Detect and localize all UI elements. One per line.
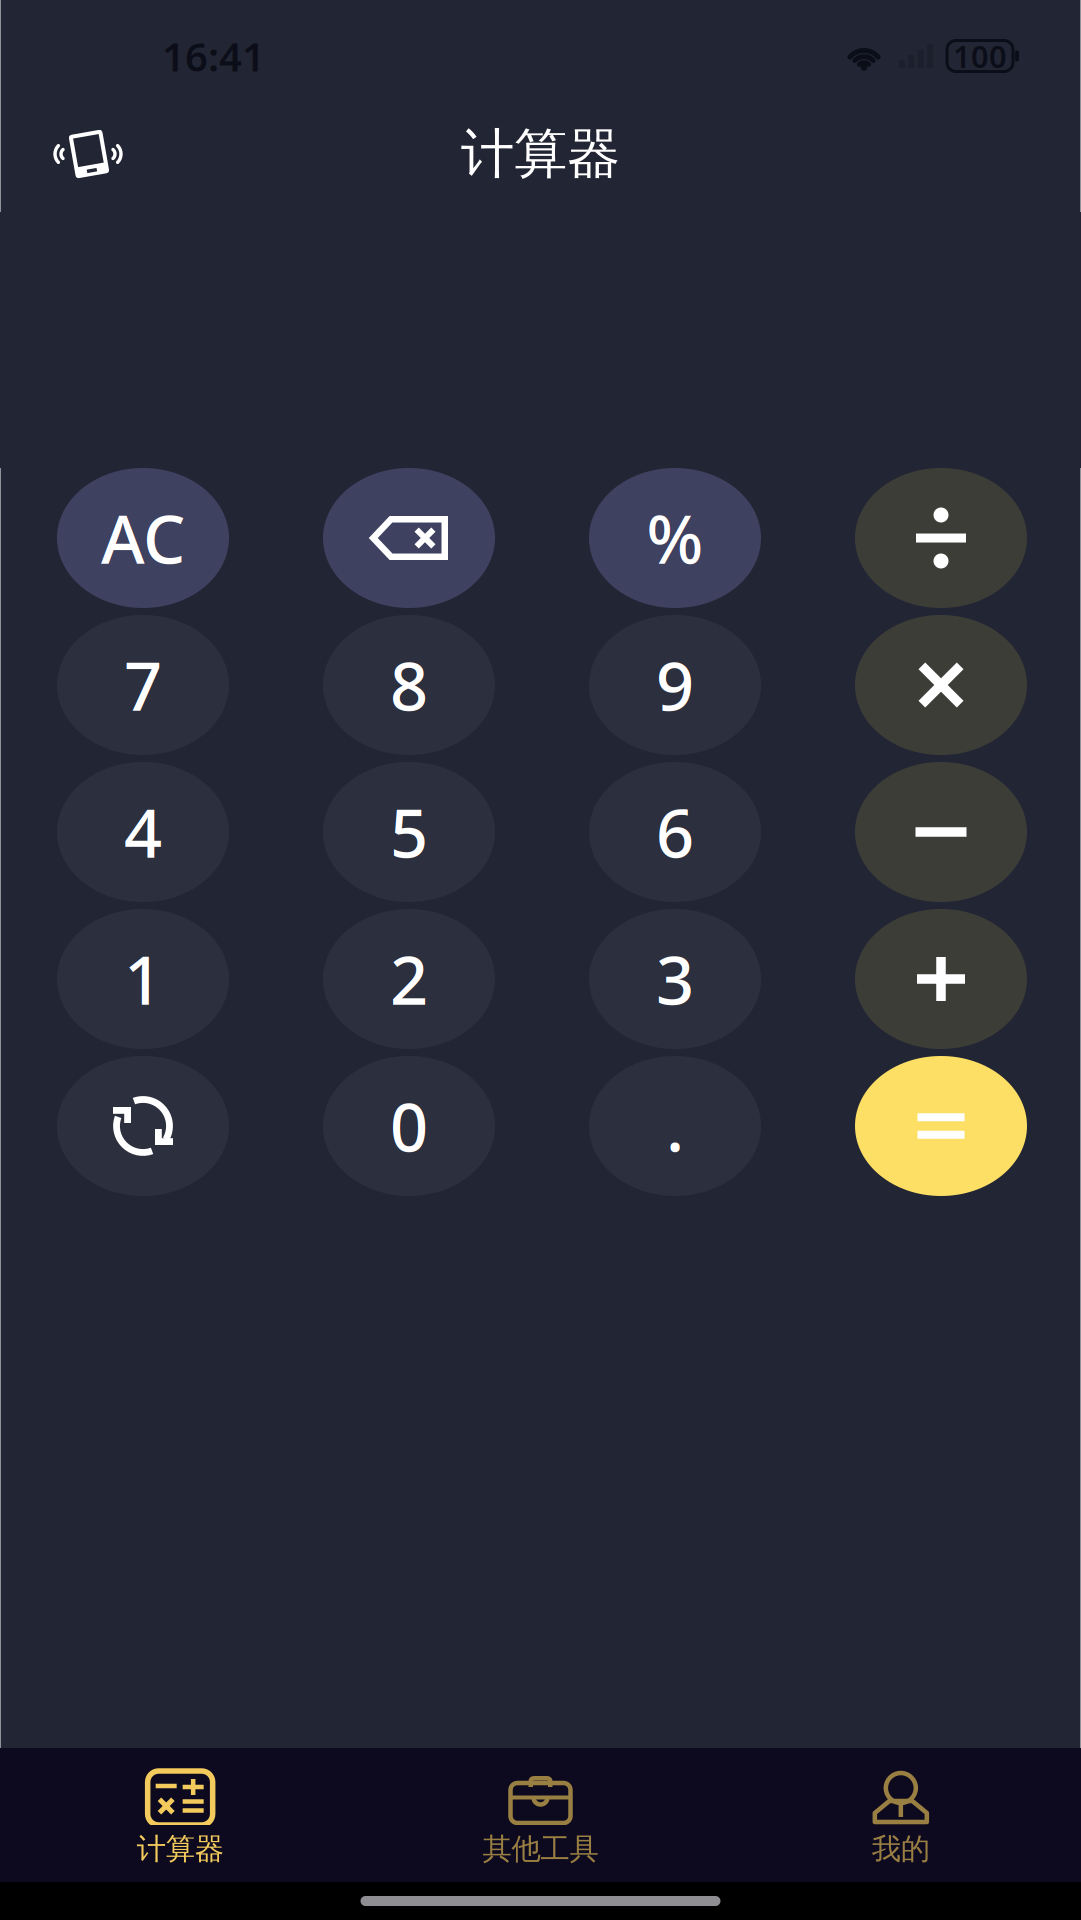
staticText: 计算器 xyxy=(137,1831,224,1867)
button[interactable]: . xyxy=(589,1056,761,1196)
button[interactable]: 7 xyxy=(57,615,229,755)
staticText: 7 xyxy=(124,641,162,729)
staticText: 100 xyxy=(953,36,1007,76)
button[interactable]: 其他工具 xyxy=(360,1748,721,1882)
button[interactable]: 3 xyxy=(589,909,761,1049)
button[interactable]: Equals xyxy=(855,1056,1027,1196)
staticText: . xyxy=(666,1082,684,1170)
staticText: 5 xyxy=(390,788,428,876)
button[interactable]: 9 xyxy=(589,615,761,755)
staticText: 2 xyxy=(390,935,428,1023)
button[interactable]: Plus xyxy=(855,909,1027,1049)
staticText: 0 xyxy=(390,1082,428,1170)
staticText: 3 xyxy=(656,935,694,1023)
button[interactable]: % xyxy=(589,468,761,608)
staticText: 4 xyxy=(124,788,162,876)
button[interactable]: Divide xyxy=(855,468,1027,608)
button[interactable]: 0 xyxy=(323,1056,495,1196)
button[interactable]: Shake to clear xyxy=(38,104,138,204)
staticText: 我的 xyxy=(872,1831,930,1867)
staticText: 9 xyxy=(656,641,694,729)
button[interactable]: Swap operands xyxy=(57,1056,229,1196)
button[interactable]: 2 xyxy=(323,909,495,1049)
button[interactable]: 6 xyxy=(589,762,761,902)
button[interactable]: AC xyxy=(57,468,229,608)
button[interactable]: 8 xyxy=(323,615,495,755)
button[interactable]: Backspace xyxy=(323,468,495,608)
staticText: AC xyxy=(101,494,185,582)
staticText: 6 xyxy=(656,788,694,876)
button[interactable]: 我的 xyxy=(721,1748,1081,1882)
staticText: 16:41 xyxy=(162,29,265,82)
button[interactable]: 4 xyxy=(57,762,229,902)
button[interactable]: Minus xyxy=(855,762,1027,902)
staticText: % xyxy=(646,494,703,582)
staticText: 计算器 xyxy=(461,121,620,187)
button[interactable]: Multiply xyxy=(855,615,1027,755)
staticText: 其他工具 xyxy=(482,1831,598,1867)
button[interactable]: 1 xyxy=(57,909,229,1049)
staticText: 1 xyxy=(124,935,162,1023)
button[interactable]: 计算器 xyxy=(0,1748,360,1882)
staticText: 8 xyxy=(390,641,428,729)
button[interactable]: 5 xyxy=(323,762,495,902)
